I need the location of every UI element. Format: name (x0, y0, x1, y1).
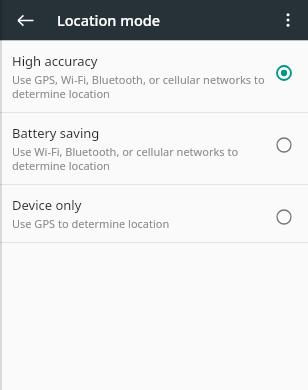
staticText: Device only (12, 196, 82, 214)
staticText: Location mode (57, 10, 161, 30)
button[interactable]: Battery saving (0, 113, 308, 184)
button[interactable]: Device only (0, 185, 308, 242)
button[interactable]: Navigate up (11, 6, 39, 34)
staticText: High accuracy (12, 52, 98, 70)
button[interactable]: More options (273, 5, 303, 35)
staticText: Use GPS, Wi-Fi, Bluetooth, or cellular n… (12, 72, 265, 101)
staticText: Battery saving (12, 124, 100, 142)
button[interactable]: High accuracy (0, 41, 308, 112)
staticText: Use GPS to determine location (12, 216, 170, 231)
staticText: Use Wi-Fi, Bluetooth, or cellular networ… (12, 144, 239, 173)
